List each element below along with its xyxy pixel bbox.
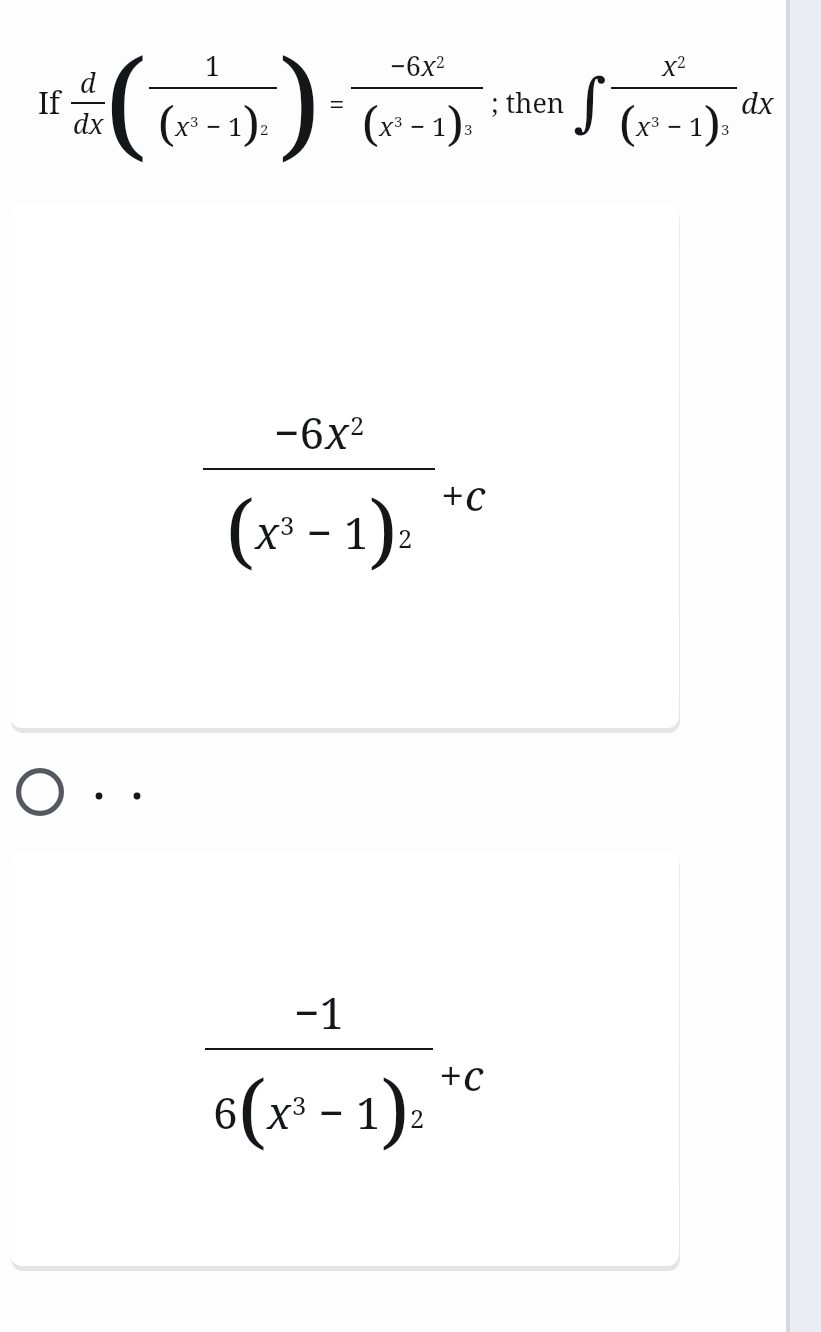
staticText: +	[441, 466, 465, 523]
staticText: 1	[228, 108, 243, 143]
staticText: c	[465, 466, 486, 523]
button[interactable]: −1	[10, 851, 679, 1266]
staticText: −	[199, 108, 228, 143]
staticText: 2	[677, 51, 686, 72]
staticText: c	[463, 1046, 484, 1103]
staticText: −	[403, 108, 432, 143]
staticText: =	[329, 84, 345, 122]
staticText: ∫	[573, 65, 607, 140]
staticText: 2	[350, 408, 365, 443]
staticText: −	[295, 502, 344, 562]
staticText: 2	[260, 119, 269, 140]
staticText: x	[175, 108, 190, 143]
staticText: d	[80, 64, 96, 101]
staticText: 3	[464, 119, 473, 140]
staticText: 1	[689, 108, 704, 143]
button[interactable]: Select option 1	[0, 733, 786, 851]
staticText: 1	[356, 1082, 381, 1142]
staticText: x	[662, 47, 677, 84]
staticText: 6	[213, 1082, 238, 1142]
staticText: 3	[190, 111, 199, 132]
staticText: )	[369, 473, 398, 584]
staticText: 2	[410, 1101, 425, 1136]
staticText: x	[421, 47, 436, 84]
staticText: )	[381, 1053, 410, 1164]
staticText: −1	[294, 982, 345, 1042]
staticText: )	[243, 90, 260, 156]
staticText: (	[362, 90, 379, 156]
staticText: 3	[394, 111, 403, 132]
staticText: 1	[432, 108, 447, 143]
staticText: 1	[205, 47, 221, 84]
staticText: 3	[721, 119, 730, 140]
staticText: x	[325, 402, 350, 462]
staticText: )	[447, 90, 464, 156]
button[interactable]: −6	[10, 205, 679, 728]
staticText: 3	[292, 1088, 307, 1123]
staticText: x	[636, 108, 651, 143]
staticText: +	[439, 1046, 463, 1103]
staticText: −	[660, 108, 689, 143]
staticText: )	[704, 90, 721, 156]
staticText: x	[255, 502, 280, 562]
staticText: 3	[280, 508, 295, 543]
staticText: (	[619, 90, 636, 156]
staticText: dx	[73, 105, 104, 142]
staticText: 3	[651, 111, 660, 132]
staticText: 1	[344, 502, 369, 562]
staticText: )	[279, 19, 321, 182]
staticText: x	[379, 108, 394, 143]
staticText: x	[267, 1082, 292, 1142]
staticText: (	[158, 90, 175, 156]
staticText: 2	[398, 521, 413, 556]
staticText: −6	[390, 47, 421, 84]
staticText: (	[105, 19, 147, 182]
staticText: (	[238, 1053, 267, 1164]
staticText: If	[38, 82, 61, 123]
staticText: dx	[741, 83, 774, 122]
staticText: ; then	[491, 84, 565, 121]
staticText: (	[226, 473, 255, 584]
staticText: −6	[274, 402, 325, 462]
staticText: −	[307, 1082, 356, 1142]
staticText: 2	[436, 51, 445, 72]
